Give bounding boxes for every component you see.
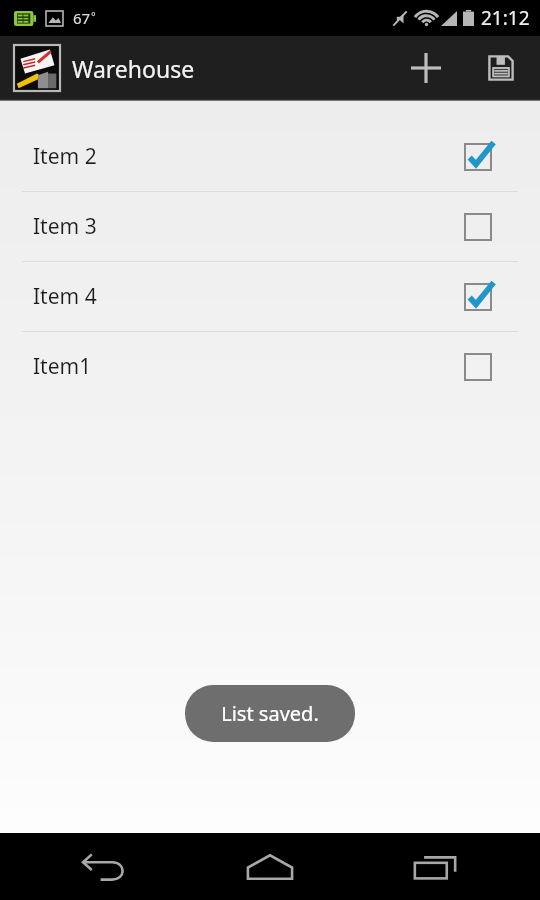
button[interactable]: Item1 — [0, 332, 540, 401]
button[interactable]: Item 2 — [0, 122, 540, 191]
button[interactable]: Item 3 — [0, 192, 540, 261]
staticText: ° — [91, 8, 96, 23]
button[interactable]: Item 4 — [0, 262, 540, 331]
button[interactable]: Add item — [390, 36, 462, 99]
staticText: Item 2 — [33, 142, 460, 171]
button[interactable]: Warehouse — [0, 45, 203, 91]
staticText: 67 — [73, 8, 91, 28]
button[interactable]: Unchecked — [460, 349, 496, 385]
staticText: 21:12 — [481, 5, 530, 31]
button[interactable]: Checked — [460, 139, 496, 175]
button[interactable]: Unchecked — [460, 209, 496, 245]
staticText: Item 4 — [33, 282, 460, 311]
button[interactable]: Save list — [462, 36, 540, 99]
button[interactable]: Recent apps — [375, 833, 495, 900]
button[interactable]: Back — [45, 833, 165, 900]
button[interactable]: Checked — [460, 279, 496, 315]
staticText: Item 3 — [33, 212, 460, 241]
staticText: Item1 — [33, 352, 460, 381]
button[interactable]: Home — [210, 833, 330, 900]
staticText: List saved. — [221, 700, 319, 727]
staticText: Warehouse — [72, 53, 195, 84]
